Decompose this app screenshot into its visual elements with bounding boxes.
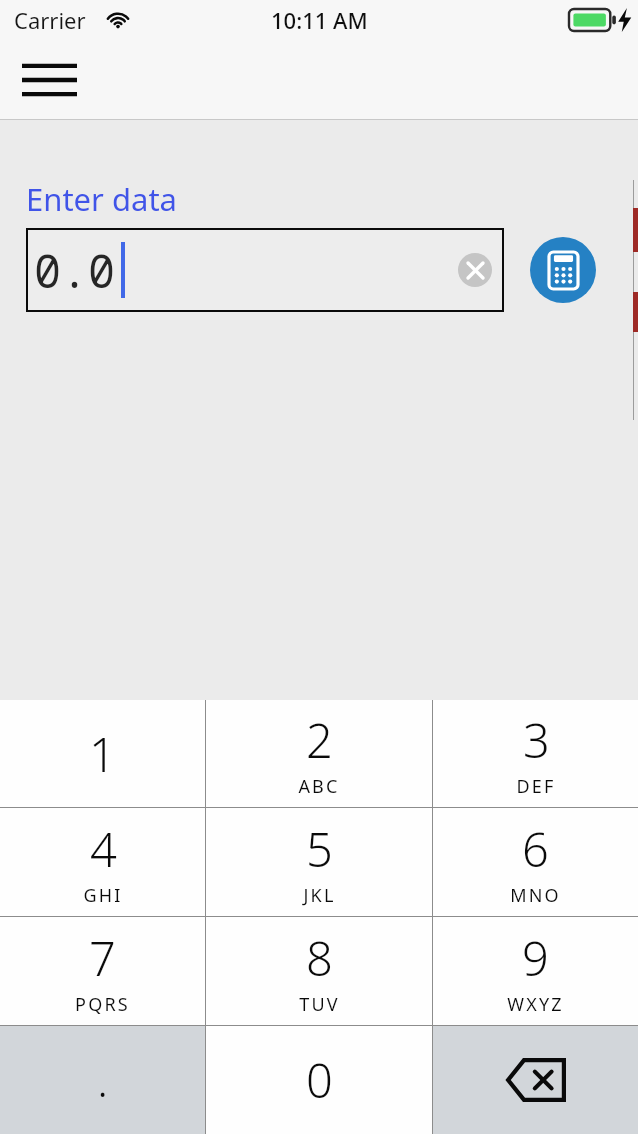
staticText: 8 [306, 926, 333, 990]
button[interactable]: 6 [433, 808, 638, 916]
staticText: GHI [83, 883, 123, 908]
staticText: Enter data [26, 178, 177, 220]
button[interactable]: 1 [0, 700, 205, 807]
staticText: PQRS [75, 992, 130, 1017]
button[interactable]: Clear text [458, 253, 492, 287]
button[interactable]: 4 [0, 808, 205, 916]
button[interactable]: 9 [433, 917, 638, 1025]
staticText: 0.0 [34, 240, 116, 301]
staticText: 0 [306, 1048, 333, 1112]
button[interactable]: 7 [0, 917, 205, 1025]
button[interactable]: Calculator [530, 237, 596, 303]
staticText: 1 [89, 722, 116, 786]
staticText: 10:11 AM [271, 5, 368, 35]
button[interactable]: 5 [206, 808, 432, 916]
staticText: JKL [303, 883, 336, 908]
staticText: . [97, 1050, 108, 1110]
staticText: 9 [522, 926, 549, 990]
staticText: 6 [522, 817, 549, 881]
staticText: Carrier [14, 5, 86, 35]
button[interactable]: 2 [206, 700, 432, 807]
staticText: 7 [89, 926, 116, 990]
staticText: MNO [510, 883, 561, 908]
staticText: ABC [298, 774, 340, 799]
staticText: WXYZ [507, 992, 564, 1017]
staticText: 5 [306, 817, 333, 881]
staticText: 4 [90, 817, 117, 881]
button[interactable]: Menu [14, 50, 84, 110]
staticText: 3 [523, 708, 550, 772]
staticText: 2 [306, 708, 333, 772]
button[interactable]: . [0, 1026, 205, 1134]
button[interactable]: Delete [433, 1026, 638, 1134]
button[interactable]: 0.0 [26, 228, 504, 312]
button[interactable]: 3 [433, 700, 638, 807]
staticText: TUV [299, 992, 340, 1017]
button[interactable]: 8 [206, 917, 432, 1025]
button[interactable]: 0 [206, 1026, 432, 1134]
staticText: DEF [516, 774, 556, 799]
